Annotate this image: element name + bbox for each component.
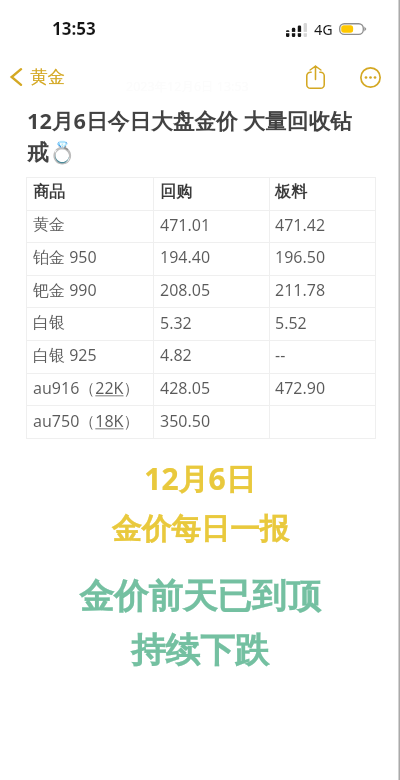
button[interactable]: More options <box>353 60 387 94</box>
staticText: 428.05 <box>160 377 211 399</box>
staticText: 471.01 <box>160 214 211 236</box>
staticText: 持续下跌 <box>131 629 269 672</box>
staticText: 金价前天已到顶 <box>79 575 321 618</box>
staticText: 208.05 <box>160 279 211 301</box>
staticText: 472.90 <box>275 377 326 399</box>
staticText: 196.50 <box>275 246 326 268</box>
staticText: 金价每日一报 <box>112 511 289 548</box>
staticText: 194.40 <box>160 246 211 268</box>
staticText: 12月6日 <box>144 458 256 499</box>
staticText: 13:53 <box>52 17 96 40</box>
staticText: 471.42 <box>275 214 326 236</box>
staticText: 黄金 <box>33 215 65 235</box>
staticText: 板料 <box>275 182 307 202</box>
button[interactable]: Share <box>298 60 332 94</box>
staticText: 回购 <box>160 182 192 202</box>
staticText: 4G <box>314 19 333 39</box>
staticText: 白银 925 <box>33 344 97 366</box>
staticText: 5.52 <box>275 312 307 334</box>
staticText: 黄金 <box>30 66 65 88</box>
staticText: 白银 <box>33 313 65 333</box>
staticText: 铂金 950 <box>33 246 97 268</box>
staticText: 350.50 <box>160 410 211 432</box>
staticText: 钯金 990 <box>33 279 97 301</box>
staticText: 5.32 <box>160 312 192 334</box>
button[interactable]: 黄金 <box>10 60 65 94</box>
staticText: 商品 <box>33 182 65 202</box>
staticText: -- <box>275 344 286 366</box>
staticText: 12月6日今日大盘金价 大量回收钻戒💍 <box>27 106 367 166</box>
staticText: au750（18K） <box>33 410 140 432</box>
staticText: au916（22K） <box>33 377 140 399</box>
staticText: 4.82 <box>160 344 192 366</box>
staticText: 211.78 <box>275 279 326 301</box>
